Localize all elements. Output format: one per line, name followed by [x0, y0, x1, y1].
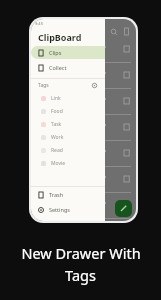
staticText: Clips	[49, 49, 62, 56]
staticText: Tags	[38, 82, 49, 89]
staticText: Work	[51, 134, 64, 141]
staticText: Food	[51, 108, 63, 115]
button[interactable]: Clips	[31, 46, 105, 59]
staticText: Task	[51, 121, 62, 128]
button[interactable]: Trash	[31, 188, 105, 201]
button[interactable]: Link	[41, 92, 105, 105]
staticText: 9:45	[35, 21, 43, 26]
button[interactable]: New clip	[115, 200, 132, 217]
button[interactable]: Food	[41, 105, 105, 118]
button[interactable]: Movie	[41, 157, 105, 170]
staticText: Settings	[49, 206, 70, 213]
staticText: New Drawer With	[21, 243, 141, 263]
button[interactable]: Read	[41, 144, 105, 157]
button[interactable]: Task	[41, 118, 105, 131]
staticText: Link	[51, 95, 61, 102]
staticText: Movie	[51, 160, 66, 167]
staticText: Collect	[49, 64, 67, 71]
staticText: Trash	[49, 191, 64, 198]
button[interactable]: Settings	[31, 203, 105, 216]
button[interactable]: Manage tags	[91, 82, 98, 89]
staticText: Read	[51, 147, 63, 154]
staticText: Tags	[65, 265, 96, 285]
staticText: ClipBoard	[38, 31, 82, 43]
button[interactable]: Collect	[31, 61, 105, 74]
button[interactable]: Work	[41, 131, 105, 144]
